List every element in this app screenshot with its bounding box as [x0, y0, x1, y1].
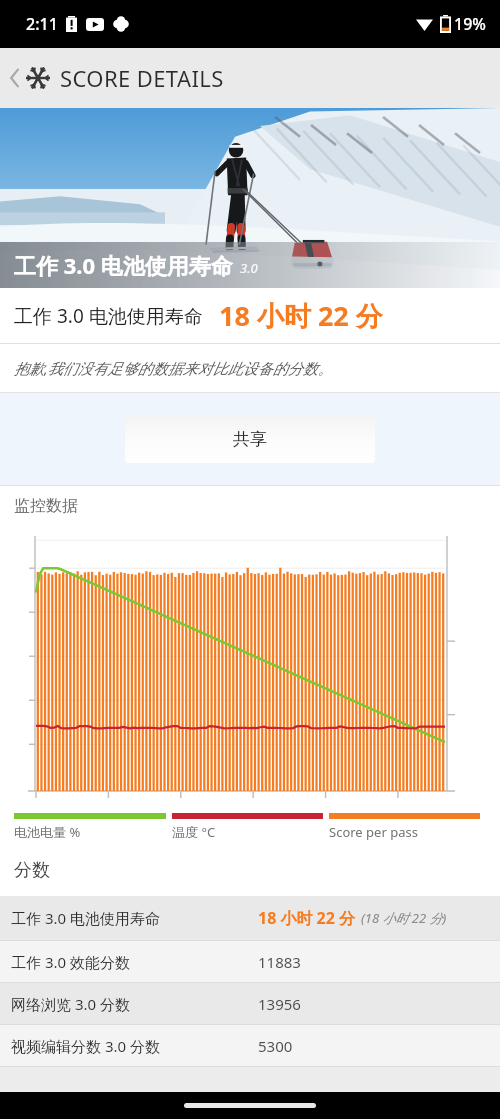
button[interactable]: 工作 3.0 效能分数	[0, 941, 500, 982]
staticText: 13956	[258, 994, 301, 1014]
staticText: 18 小时 22 分	[219, 297, 383, 334]
button[interactable]: 共享	[125, 415, 375, 463]
staticText: 5300	[258, 1036, 293, 1056]
staticText: 工作 3.0 效能分数	[11, 952, 130, 972]
staticText: 3.0	[240, 259, 258, 277]
staticText: 抱歉,我们没有足够的数据来对比此设备的分数。	[14, 358, 333, 378]
staticText: 11883	[258, 952, 301, 972]
staticText: 监控数据	[14, 496, 78, 516]
staticText: 温度 °C	[172, 823, 216, 841]
staticText: SCORE DETAILS	[60, 63, 224, 93]
staticText: 2:11	[26, 13, 58, 35]
staticText: 分数	[14, 859, 50, 882]
other: Home gesture	[184, 1103, 316, 1108]
button[interactable]: 工作 3.0 电池使用寿命	[0, 896, 500, 940]
button[interactable]: Back	[0, 48, 500, 108]
other: Back	[7, 65, 23, 91]
button[interactable]: 视频编辑分数 3.0 分数	[0, 1025, 500, 1066]
staticText: (18 小时 22 分)	[361, 909, 447, 927]
staticText: 网络浏览 3.0 分数	[11, 994, 130, 1014]
staticText: 19%	[454, 13, 486, 35]
staticText: 工作 3.0 电池使用寿命	[14, 303, 203, 329]
staticText: Score per pass	[329, 823, 418, 841]
staticText: 工作 3.0 电池使用寿命	[14, 250, 233, 280]
staticText: 18 小时 22 分	[258, 907, 356, 929]
staticText: 工作 3.0 电池使用寿命	[11, 908, 160, 928]
staticText: 视频编辑分数 3.0 分数	[11, 1036, 160, 1056]
staticText: 共享	[233, 429, 267, 450]
staticText: 电池电量 %	[14, 823, 81, 841]
button[interactable]: 网络浏览 3.0 分数	[0, 983, 500, 1024]
